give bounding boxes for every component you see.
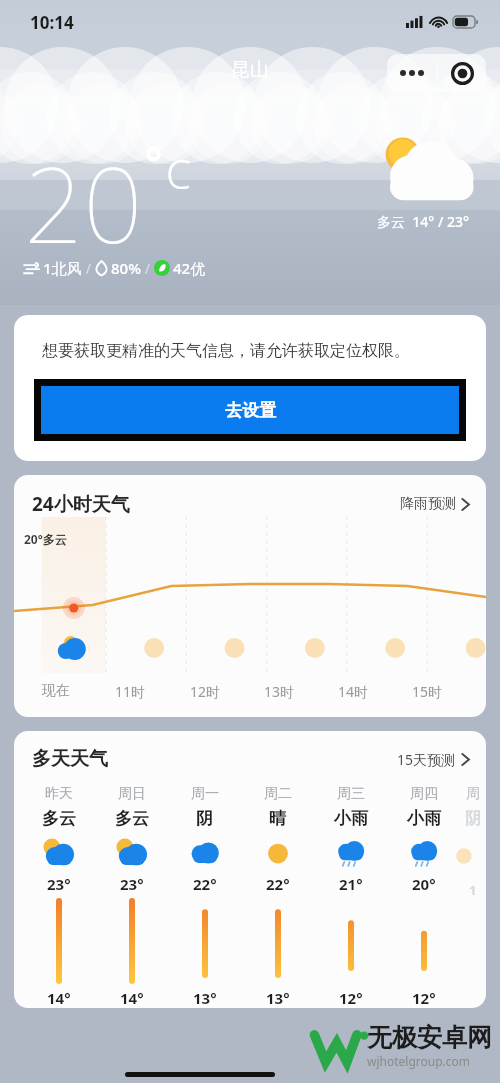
button[interactable]: 周三 [314,785,387,1008]
staticText: 20°多云 [24,531,67,547]
staticText: 多天天气 [32,747,108,771]
staticText: 12° [339,988,363,1008]
staticText: 12时 [190,682,221,701]
staticText: wjhotelgroup.com [367,1053,471,1069]
staticText: 阴 [196,808,213,829]
staticText: 无极安卓网 [367,1022,492,1053]
staticText: 周 [466,785,480,803]
staticText: 21° [339,874,363,894]
staticText: 多云 [42,808,76,829]
staticText: 去设置 [225,400,276,421]
staticText: 23° [120,874,144,894]
staticText: 昨天 [45,785,73,803]
staticText: / [141,259,154,278]
button[interactable]: 15天预测 [397,750,470,769]
staticText: C [166,146,191,200]
staticText: 现在 [42,682,70,700]
staticText: 小雨 [407,808,441,829]
staticText: 23° [47,874,71,894]
staticText: 13° [266,988,290,1008]
staticText: 多云 14° / 23° [377,212,469,231]
staticText: 周日 [118,785,146,803]
staticText: 80% [111,258,141,278]
staticText: 降雨预测 [400,495,456,513]
button[interactable]: 周一 [168,785,241,1008]
staticText: 24小时天气 [32,491,130,517]
button[interactable]: 昨天 [22,785,95,1008]
staticText: 22° [266,874,290,894]
staticText: 阴 [465,809,481,829]
staticText: 昆山 [231,58,269,82]
staticText: 14° [120,988,144,1008]
staticText: 11时 [115,682,146,701]
staticText: 1北风 [43,258,82,278]
button[interactable]: Locate [438,54,486,92]
staticText: 多云 [115,808,149,829]
staticText: 15天预测 [397,750,456,769]
staticText: 1 [469,881,477,899]
staticText: 13° [193,988,217,1008]
button[interactable]: 周日 [95,785,168,1008]
button[interactable]: 去设置 [41,386,459,434]
staticText: 14时 [338,682,369,701]
staticText: 22° [193,874,217,894]
staticText: 周四 [410,785,438,803]
staticText: 12° [412,988,436,1008]
staticText: 20 [24,132,143,274]
staticText: 想要获取更精准的天气信息，请允许获取定位权限。 [42,341,410,361]
staticText: 13时 [264,682,295,701]
staticText: 14° [47,988,71,1008]
staticText: 周二 [264,785,292,803]
staticText: 42优 [173,258,206,278]
staticText: 10:14 [30,11,74,34]
staticText: / [82,259,95,278]
staticText: 周三 [337,785,365,803]
staticText: 晴 [269,808,286,829]
button[interactable]: 降雨预测 [400,495,470,513]
button[interactable]: More options [387,54,437,92]
staticText: 15时 [412,682,443,701]
staticText: 小雨 [334,808,368,829]
staticText: 周一 [191,785,219,803]
button[interactable]: 周四 [387,785,460,1008]
staticText: 20° [412,874,436,894]
button[interactable]: 周二 [241,785,314,1008]
